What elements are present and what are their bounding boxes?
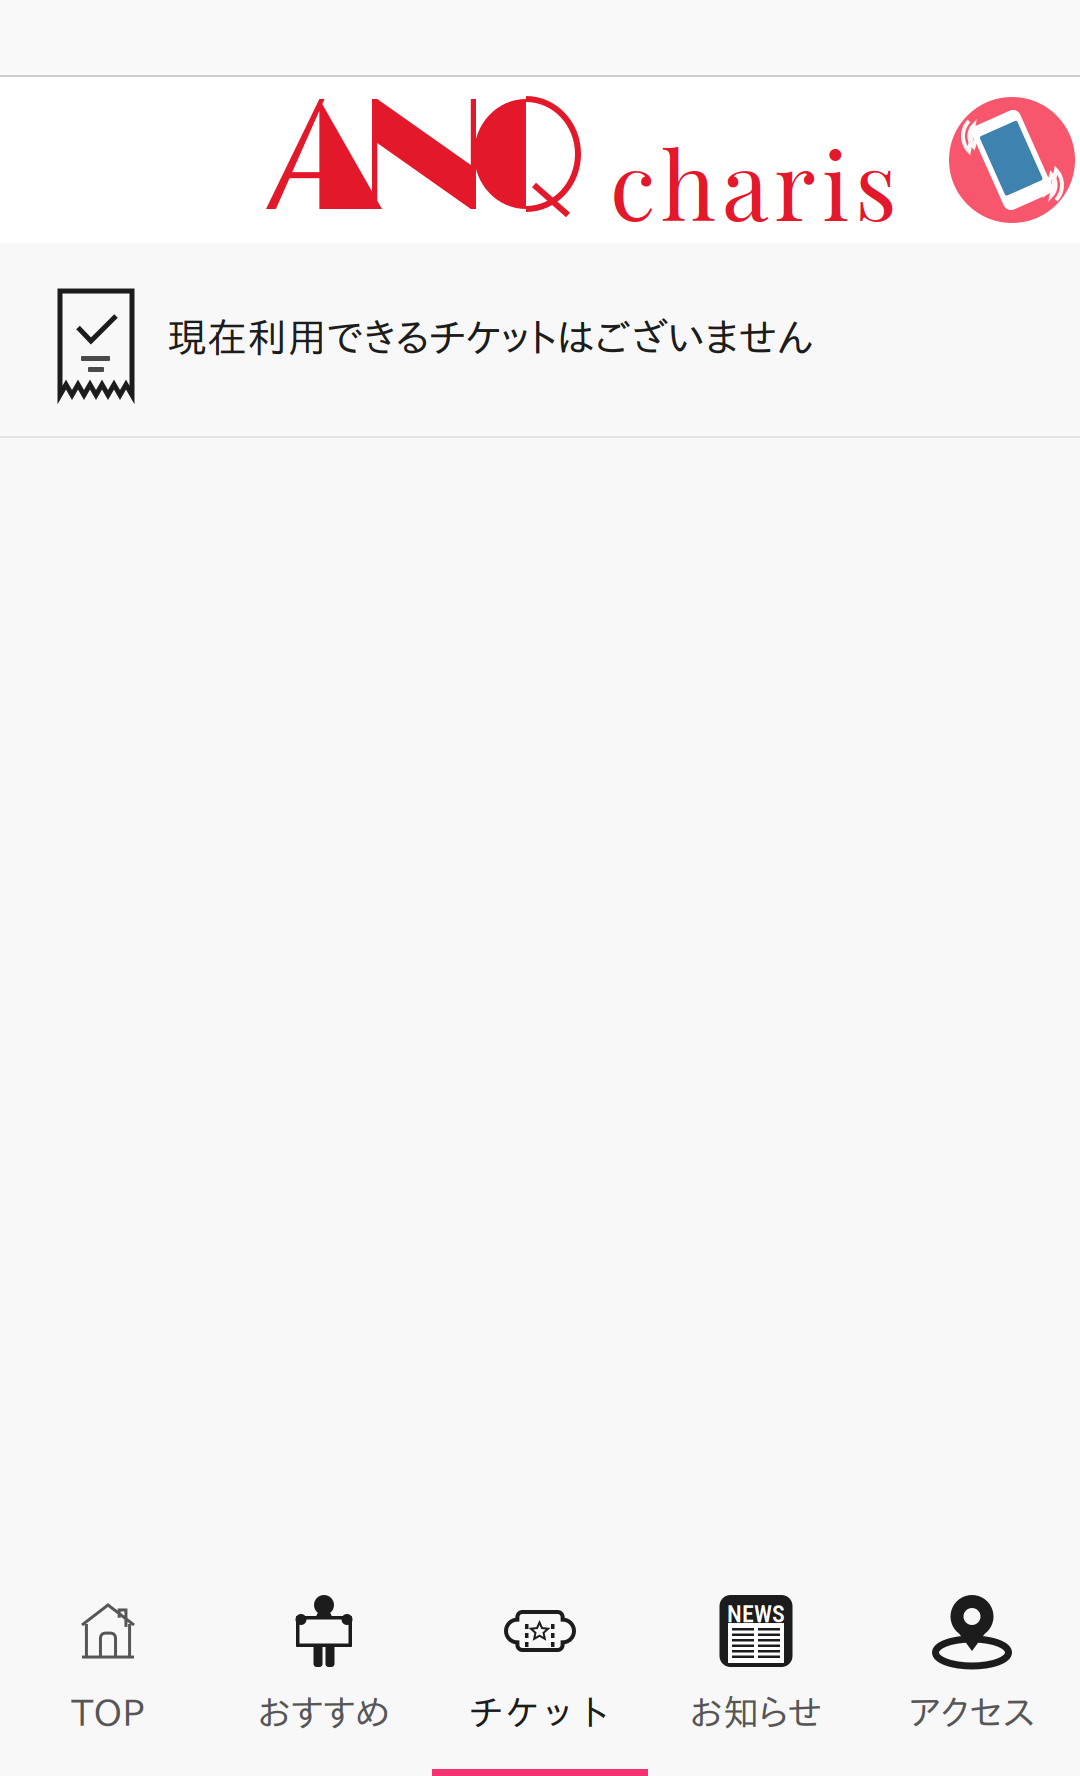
staticText: チケット [468, 1694, 612, 1730]
staticText: アクセス [909, 1694, 1034, 1730]
button[interactable]: TOP [0, 1556, 216, 1776]
staticText: お知らせ [690, 1694, 822, 1730]
staticText: charis [610, 120, 897, 244]
staticText: 現在利用できるチケットはございません [167, 317, 813, 357]
staticText: NEWS [727, 1600, 785, 1628]
button[interactable]: おすすめ [216, 1556, 432, 1776]
staticText: おすすめ [258, 1694, 390, 1730]
button[interactable]: NEWS [648, 1556, 864, 1776]
button[interactable]: アクセス [864, 1556, 1080, 1776]
button[interactable]: チケット [432, 1556, 648, 1776]
staticText: TOP [71, 1694, 144, 1730]
button[interactable]: Shake phone [949, 97, 1075, 223]
